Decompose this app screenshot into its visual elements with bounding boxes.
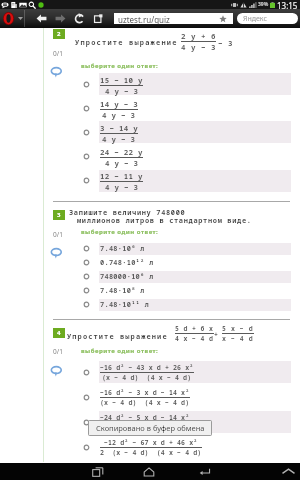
button[interactable]: Forward (51, 9, 70, 28)
staticText: 13:15 (277, 0, 298, 9)
button[interactable] (83, 419, 90, 426)
staticText: −24 d² − 5 x d − 14 x² (100, 413, 190, 422)
staticText: −16 d² − 3 x d − 14 x² (100, 388, 190, 397)
staticText: 0/1 (53, 230, 63, 239)
button[interactable] (83, 129, 90, 136)
button[interactable] (53, 97, 290, 119)
button[interactable]: Comments (51, 67, 62, 78)
button[interactable]: 2 (53, 29, 65, 39)
button[interactable]: Comments (51, 366, 62, 377)
button[interactable]: 4 (53, 328, 65, 338)
button[interactable]: uztest.ru/quiz (114, 13, 233, 24)
button[interactable] (53, 243, 290, 255)
staticText: 0.748·10¹² л (100, 258, 154, 268)
button[interactable]: Tabs (89, 9, 108, 28)
button[interactable]: Expand (272, 463, 300, 480)
button[interactable] (53, 436, 290, 458)
staticText: 4 y − 3 (105, 158, 139, 168)
staticText: 24 − 22 y (100, 147, 143, 157)
staticText: 0/1 (53, 49, 63, 58)
button[interactable]: Back (32, 9, 51, 28)
staticText: 748000·10⁶ л (100, 272, 154, 282)
button[interactable]: Reload (70, 9, 89, 28)
staticText: выберите один ответ: (81, 347, 159, 355)
staticText: Упростите выражение (75, 38, 178, 48)
button[interactable] (83, 245, 90, 252)
staticText: −16 d² − 43 x d + 26 x² (100, 363, 194, 372)
staticText: Яндекс (243, 14, 267, 24)
staticText: 7.48·10⁶ л (100, 244, 145, 254)
staticText: 4 (57, 329, 61, 337)
button[interactable] (83, 259, 90, 266)
button[interactable]: Comments (51, 248, 62, 259)
staticText: − 3 (218, 38, 233, 48)
button[interactable] (53, 271, 290, 283)
staticText: (x − 4 d) (4 x − 4 d) (100, 423, 190, 432)
staticText: (x − 4 d) (4 x − 4 d) (102, 373, 192, 382)
staticText: миллионов литров в стандартном виде. (77, 216, 252, 226)
button[interactable] (83, 81, 90, 88)
button[interactable] (53, 73, 290, 95)
button[interactable] (83, 444, 90, 451)
staticText: 39% (258, 1, 269, 8)
button[interactable] (53, 285, 290, 297)
button[interactable]: Bookmark (219, 15, 227, 23)
staticText: выберите один ответ: (81, 62, 159, 70)
staticText: Скопировано в буфер обмена (96, 423, 205, 433)
button[interactable] (53, 257, 290, 269)
button[interactable] (83, 301, 90, 308)
staticText: выберите один ответ: (81, 228, 159, 236)
button[interactable] (83, 287, 90, 294)
staticText: 14 y − 3 (100, 99, 138, 109)
button[interactable] (83, 153, 90, 160)
staticText: x − 4 d (222, 334, 254, 343)
staticText: 3 (57, 211, 61, 219)
button[interactable] (83, 369, 90, 376)
button[interactable]: Home (134, 463, 164, 480)
staticText: Упростите выражение (67, 332, 168, 342)
staticText: 4 y − 3 (102, 110, 136, 120)
button[interactable] (53, 121, 290, 143)
staticText: 7.48·10⁸ л (100, 286, 145, 296)
button[interactable]: Recent apps (83, 463, 113, 480)
staticText: uztest.ru/quiz (118, 14, 170, 25)
button[interactable]: Скопировано в буфер обмена (89, 421, 211, 435)
button[interactable] (83, 177, 90, 184)
staticText: 15 − 10 y (100, 75, 143, 85)
staticText: 0/1 (53, 347, 63, 356)
button[interactable]: Back (190, 463, 220, 480)
button[interactable] (53, 361, 290, 383)
button[interactable]: 3 (53, 210, 65, 220)
staticText: 2 (57, 30, 61, 38)
staticText: 7.48·10¹¹ л (100, 300, 149, 310)
staticText: −12 d² − 67 x d + 46 x² (104, 438, 198, 447)
staticText: 3 − 14 y (100, 123, 138, 133)
button[interactable]: Яндекс (237, 13, 298, 24)
staticText: 4 y − 3 (105, 182, 139, 192)
button[interactable] (83, 105, 90, 112)
staticText: Запишите величину 748000 (69, 208, 186, 218)
button[interactable] (53, 386, 290, 408)
button[interactable] (53, 146, 290, 168)
staticText: 12 − 11 y (100, 171, 143, 181)
staticText: (x − 4 d) (4 x − 4 d) (100, 398, 190, 407)
button[interactable] (53, 411, 290, 433)
button[interactable]: Opera menu (0, 9, 25, 28)
staticText: 4 y − 3 (102, 134, 136, 144)
button[interactable] (53, 170, 290, 192)
staticText: 5 d + 6 x (175, 324, 214, 333)
staticText: 4 y − 3 (181, 42, 216, 52)
staticText: 2 y + 6 (181, 31, 216, 41)
staticText: 4 x − 4 d (175, 334, 214, 343)
button[interactable] (53, 299, 290, 311)
button[interactable] (83, 273, 90, 280)
staticText: 2 (x − 4 d) (4 x − 4 d) (100, 448, 202, 457)
staticText: 4 y − 3 (105, 86, 139, 96)
button[interactable] (83, 394, 90, 401)
staticText: 5 x − d (222, 324, 254, 333)
staticText: + (214, 330, 218, 339)
